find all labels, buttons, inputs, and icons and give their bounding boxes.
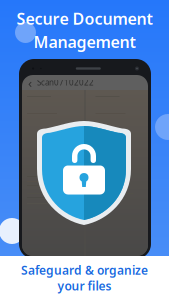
staticText: Safeguard & organize: [21, 262, 148, 278]
staticText: Management: [33, 31, 135, 52]
staticText: your files: [57, 278, 111, 294]
staticText: Scan07102022: [37, 77, 94, 88]
staticText: ‹: [28, 74, 32, 91]
staticText: Secure Document: [16, 8, 152, 29]
